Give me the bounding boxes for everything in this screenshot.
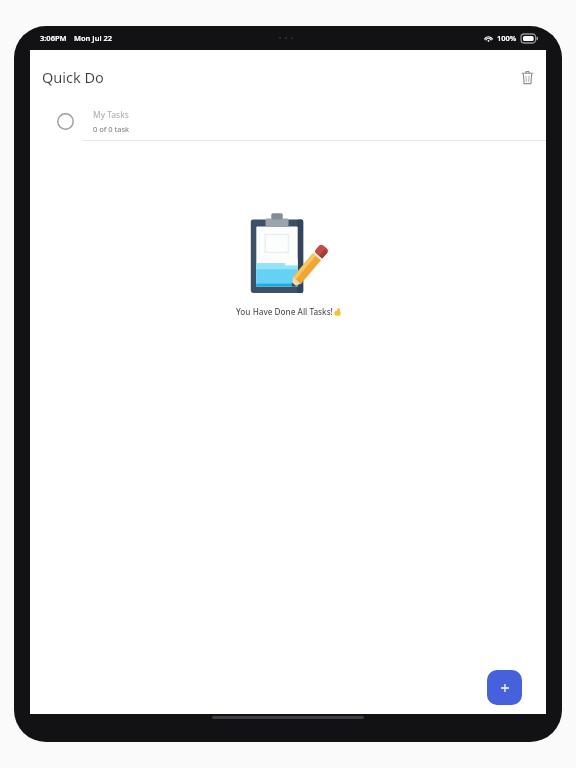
staticText: 100%: [497, 33, 517, 43]
staticText: 0 of 0 task: [93, 124, 130, 134]
staticText: 3:06PM: [40, 33, 67, 43]
button[interactable]: Quick Do: [42, 67, 104, 87]
staticText: You Have Done All Tasks!: [236, 306, 333, 317]
staticText: Mon Jul 22: [74, 33, 113, 43]
button[interactable]: Delete all tasks: [517, 67, 537, 87]
button[interactable]: Add task: [487, 670, 522, 705]
button[interactable]: My Tasks: [30, 102, 546, 140]
staticText: My Tasks: [93, 109, 129, 121]
